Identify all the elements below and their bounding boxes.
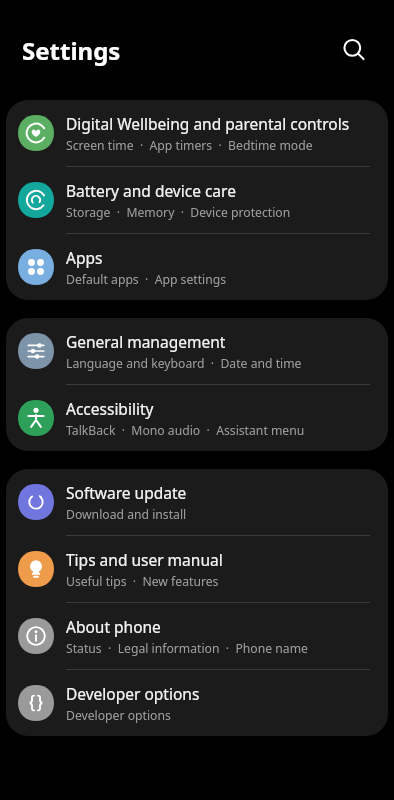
button[interactable]: General management xyxy=(6,318,388,384)
staticText: Language and keyboard · Date and time xyxy=(66,355,302,372)
staticText: Settings xyxy=(22,34,121,67)
staticText: Apps xyxy=(66,247,103,268)
button[interactable]: Accessibility xyxy=(6,385,388,451)
staticText: Digital Wellbeing and parental controls xyxy=(66,113,350,134)
staticText: Screen time · App timers · Bedtime mode xyxy=(66,137,313,154)
staticText: Default apps · App settings xyxy=(66,271,227,288)
button[interactable]: Battery and device care xyxy=(6,167,388,233)
staticText: General management xyxy=(66,331,226,352)
button[interactable]: Apps xyxy=(6,234,388,300)
staticText: TalkBack · Mono audio · Assistant menu xyxy=(66,422,305,439)
staticText: Developer options xyxy=(66,683,200,704)
staticText: Developer options xyxy=(66,707,171,724)
button[interactable]: Software update xyxy=(6,469,388,535)
staticText: Status · Legal information · Phone name xyxy=(66,640,308,657)
staticText: Battery and device care xyxy=(66,180,236,201)
button[interactable]: About phone xyxy=(6,603,388,669)
button[interactable]: Digital Wellbeing and parental controls xyxy=(6,100,388,166)
staticText: Accessibility xyxy=(66,398,154,419)
button[interactable]: Search xyxy=(332,28,376,72)
button[interactable]: Tips and user manual xyxy=(6,536,388,602)
staticText: Software update xyxy=(66,482,187,503)
staticText: About phone xyxy=(66,616,161,637)
staticText: Storage · Memory · Device protection xyxy=(66,204,291,221)
staticText: Tips and user manual xyxy=(66,549,223,570)
staticText: Download and install xyxy=(66,506,187,523)
button[interactable]: Developer options xyxy=(6,670,388,736)
staticText: Useful tips · New features xyxy=(66,573,219,590)
